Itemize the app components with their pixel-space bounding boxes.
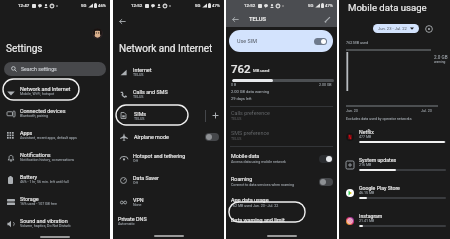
staticText: Bluetooth, pairing bbox=[20, 114, 48, 118]
staticText: Use SIM bbox=[237, 38, 257, 44]
button[interactable] bbox=[319, 155, 333, 163]
staticText: App data usage bbox=[231, 197, 269, 203]
button[interactable]: Roaming bbox=[226, 170, 337, 193]
button[interactable]: Edit bbox=[322, 14, 333, 25]
button[interactable]: Airplane mode bbox=[113, 126, 224, 147]
staticText: TELUS bbox=[133, 95, 144, 99]
button[interactable]: VPN bbox=[113, 191, 224, 213]
button[interactable]: Settings bbox=[424, 24, 433, 33]
button[interactable]: Netflix bbox=[339, 122, 450, 150]
staticText: Data Saver bbox=[133, 175, 159, 181]
button[interactable]: App data usage bbox=[226, 193, 337, 208]
staticText: Google Play Store bbox=[359, 185, 400, 191]
button[interactable]: Add SIM bbox=[206, 105, 224, 126]
staticText: Access data using mobile network bbox=[231, 160, 286, 164]
button[interactable] bbox=[205, 133, 219, 141]
staticText: TELUS bbox=[231, 137, 242, 141]
staticText: Airplane mode bbox=[134, 134, 169, 140]
button[interactable]: Use SIM bbox=[229, 30, 333, 52]
staticText: Hotspot and tethering bbox=[133, 153, 186, 159]
staticText: 12:47 bbox=[18, 3, 30, 8]
staticText: Off bbox=[133, 159, 138, 163]
button[interactable]: System updates bbox=[339, 150, 450, 178]
button[interactable]: Apps bbox=[0, 124, 110, 146]
button[interactable]: Back bbox=[230, 14, 241, 25]
staticText: Netflix bbox=[359, 129, 374, 135]
staticText: Private DNS bbox=[118, 216, 147, 222]
staticText: 46.15 MB bbox=[359, 191, 375, 195]
staticText: TELUS bbox=[231, 117, 242, 121]
staticText: 47% bbox=[212, 3, 220, 8]
button[interactable]: Back bbox=[117, 16, 128, 27]
staticText: Network and Internet bbox=[20, 86, 71, 92]
staticText: Jul. 23 bbox=[421, 109, 432, 113]
staticText: Battery bbox=[20, 174, 38, 180]
button[interactable]: Google Play Store bbox=[339, 178, 450, 206]
button[interactable]: Calls and SMS bbox=[113, 83, 224, 105]
staticText: 477 MB bbox=[359, 135, 372, 139]
staticText: None bbox=[133, 203, 142, 207]
staticText: TELUS bbox=[249, 16, 267, 23]
staticText: 5G bbox=[308, 3, 314, 8]
button[interactable]: Mobile data bbox=[226, 147, 337, 170]
button[interactable]: Sound and vibration bbox=[0, 212, 110, 234]
button[interactable]: Battery bbox=[0, 168, 110, 190]
staticText: 12:52 bbox=[131, 3, 143, 8]
staticText: 762 MB used bbox=[346, 40, 369, 44]
staticText: Notifications bbox=[20, 152, 51, 158]
staticText: TELUS bbox=[134, 117, 145, 121]
staticText: Automatic bbox=[118, 222, 135, 226]
staticText: 21.41 MB bbox=[359, 219, 375, 223]
button[interactable]: SMS preference bbox=[226, 130, 337, 143]
button[interactable]: Connected devices bbox=[0, 102, 110, 124]
button[interactable] bbox=[314, 38, 327, 45]
staticText: warning bbox=[434, 60, 446, 64]
staticText: Internet bbox=[133, 67, 152, 73]
staticText: MB used bbox=[253, 68, 270, 73]
staticText: 46% bbox=[98, 3, 106, 8]
button[interactable]: Network and Internet bbox=[0, 80, 110, 102]
staticText: Notification history, conversations bbox=[20, 158, 75, 162]
staticText: Mobile, Wi-Fi, hotspot bbox=[20, 92, 55, 96]
button[interactable]: Data Saver bbox=[113, 169, 224, 191]
button[interactable]: Private DNS bbox=[113, 213, 224, 226]
staticText: Assistant, recent apps, default apps bbox=[20, 136, 77, 140]
staticText: 762 MB used Jun. 23 - Jul. 22 bbox=[231, 204, 279, 208]
staticText: 762 bbox=[231, 62, 251, 75]
button[interactable]: SIMs bbox=[113, 105, 205, 126]
button[interactable]: Notifications bbox=[0, 146, 110, 168]
staticText: 2.0 GB bbox=[434, 55, 448, 60]
staticText: 216 MB bbox=[359, 163, 372, 167]
staticText: Excludes data used by operator networks bbox=[346, 117, 412, 121]
button[interactable]: Instagram bbox=[339, 206, 450, 234]
staticText: Connected devices bbox=[20, 108, 66, 114]
button[interactable]: Storage bbox=[0, 190, 110, 212]
staticText: Instagram bbox=[359, 213, 383, 219]
button[interactable]: Search settings bbox=[4, 62, 106, 76]
staticText: 29 days left bbox=[231, 96, 252, 101]
staticText: VPN bbox=[133, 197, 144, 203]
button[interactable]: Internet bbox=[113, 61, 224, 83]
button[interactable] bbox=[319, 178, 333, 186]
staticText: Network and Internet bbox=[119, 43, 213, 55]
staticText: 5G bbox=[195, 3, 201, 8]
staticText: Connect to data services when roaming bbox=[231, 183, 295, 187]
staticText: Sound and vibration bbox=[20, 218, 68, 224]
staticText: Roaming bbox=[231, 176, 253, 182]
staticText: 2.00 GB bbox=[319, 83, 332, 87]
button[interactable]: Hotspot and tethering bbox=[113, 147, 224, 169]
staticText: 5G bbox=[81, 3, 87, 8]
button[interactable]: Calls preference bbox=[226, 107, 337, 123]
staticText: Mobile data usage bbox=[348, 2, 427, 13]
staticText: 2.00 GB data warning bbox=[231, 89, 270, 94]
staticText: 12:52 bbox=[244, 3, 256, 8]
staticText: Storage bbox=[20, 196, 39, 202]
button[interactable]: Jun. 23 - Jul. 22 bbox=[373, 24, 419, 33]
staticText: 0 B bbox=[231, 83, 237, 87]
staticText: System updates bbox=[359, 157, 397, 163]
staticText: TELUS bbox=[133, 73, 144, 77]
staticText: Settings bbox=[6, 43, 43, 55]
staticText: 47% bbox=[325, 3, 333, 8]
staticText: Volume, haptics, Do Not Disturb bbox=[20, 224, 71, 228]
button[interactable]: Account bbox=[92, 28, 103, 39]
